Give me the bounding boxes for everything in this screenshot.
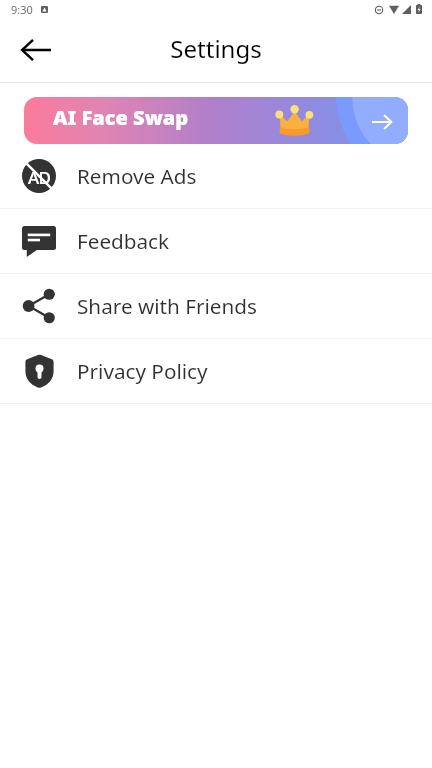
button[interactable]: Back: [10, 24, 62, 76]
staticText: Settings: [170, 32, 262, 65]
button[interactable]: Feedback: [0, 209, 432, 273]
staticText: AD: [28, 166, 51, 189]
button[interactable]: AI Face Swap: [24, 97, 408, 144]
staticText: Remove Ads: [77, 162, 197, 190]
button[interactable]: AD: [0, 144, 432, 208]
staticText: Privacy Policy: [77, 357, 208, 385]
staticText: 9:30: [11, 2, 33, 17]
other: Open AI Face Swap: [372, 115, 392, 129]
button[interactable]: Privacy Policy: [0, 339, 432, 403]
staticText: Feedback: [77, 227, 170, 255]
staticText: Share with Friends: [77, 292, 257, 320]
button[interactable]: Share with Friends: [0, 274, 432, 338]
staticText: AI Face Swap: [53, 104, 189, 131]
